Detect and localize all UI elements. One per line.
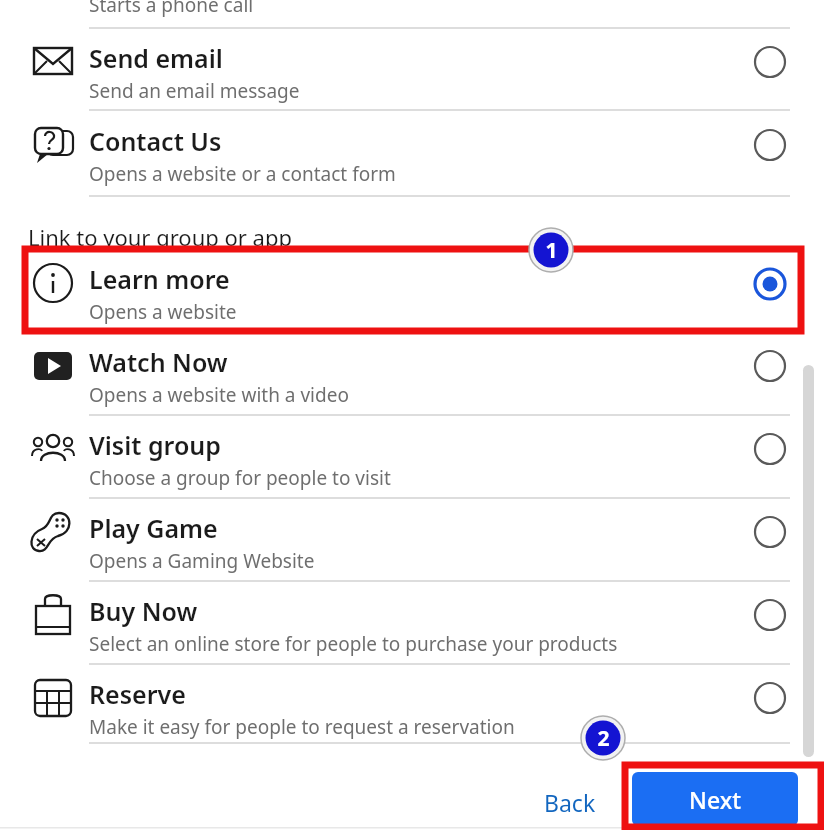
button[interactable]: Buy Now	[0, 584, 824, 667]
staticText: Send an email message	[89, 78, 300, 104]
staticText: Back	[544, 787, 596, 818]
staticText: Opens a website or a contact form	[89, 161, 396, 187]
staticText: Opens a website	[89, 299, 237, 325]
staticText: Reserve	[89, 677, 186, 711]
staticText: Learn more	[89, 262, 230, 296]
staticText: Choose a group for people to visit	[89, 465, 391, 491]
button[interactable]: Play Game	[0, 501, 824, 584]
button[interactable]: Contact Us	[0, 114, 824, 197]
staticText: Next	[689, 784, 741, 815]
button[interactable]: Back	[536, 783, 604, 822]
button[interactable]: Send email	[0, 31, 824, 114]
button[interactable]: Learn more	[0, 248, 824, 333]
staticText: 1	[545, 236, 558, 265]
button[interactable]: Watch Now	[0, 335, 824, 418]
staticText: Watch Now	[89, 345, 228, 379]
staticText: Send email	[89, 41, 223, 75]
staticText: Opens a website with a video	[89, 382, 349, 408]
staticText: Select an online store for people to pur…	[89, 631, 618, 657]
staticText: Starts a phone call	[89, 0, 254, 18]
button[interactable]: Visit group	[0, 418, 824, 501]
staticText: Make it easy for people to request a res…	[89, 714, 515, 740]
staticText: Play Game	[89, 511, 218, 545]
staticText: Contact Us	[89, 124, 222, 158]
staticText: Opens a Gaming Website	[89, 548, 315, 574]
staticText: Link to your group or app	[28, 222, 293, 252]
button[interactable]: Reserve	[0, 667, 824, 746]
button[interactable]: Next	[632, 772, 798, 826]
staticText: Visit group	[89, 428, 221, 462]
staticText: 2	[597, 724, 610, 753]
staticText: Buy Now	[89, 594, 198, 628]
